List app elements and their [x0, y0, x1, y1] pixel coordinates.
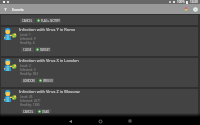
button[interactable]: CLOSE: [21, 47, 34, 52]
button[interactable]: Recent apps: [123, 117, 137, 125]
button[interactable]: DEAD: [37, 109, 51, 114]
staticText: Infected: 2671: [20, 99, 41, 103]
staticText: Healthy: 1385: [20, 103, 40, 107]
button[interactable]: CANCEL: [20, 18, 35, 23]
button[interactable]: Map: [183, 6, 189, 12]
staticText: 12:30: [190, 0, 198, 4]
staticText: Healthy: 4: [20, 41, 35, 45]
button[interactable]: CANCEL: [21, 109, 36, 114]
staticText: Infected: 9: [20, 37, 36, 41]
staticText: Infection with Virus Z in Moscow: [19, 89, 80, 94]
staticText: VIRUS X: [43, 79, 53, 83]
staticText: 100%: [177, 0, 185, 4]
staticText: Infection with Virus Y in Rome: [19, 27, 76, 32]
staticText: Infection with Virus X in London: [19, 58, 79, 63]
staticText: TARGET: [40, 48, 50, 52]
button[interactable]: TARGET: [35, 47, 51, 52]
staticText: Level: 1: [20, 33, 31, 37]
button[interactable]: Navigate up: [2, 4, 8, 14]
button[interactable]: LONDON: [21, 78, 37, 83]
button[interactable]: Home: [93, 117, 107, 125]
button[interactable]: FLAG + NOTIFY: [36, 18, 61, 23]
staticText: Infected: 3: [20, 68, 36, 72]
staticText: CANCEL: [23, 110, 34, 114]
button[interactable]: Infection with Virus Z in Moscow: [1, 89, 198, 118]
button[interactable]: Infection with Virus Y in Rome: [1, 27, 198, 56]
staticText: Level: 2: [20, 64, 31, 68]
staticText: LONDON: [23, 79, 35, 83]
button[interactable]: Back: [63, 117, 77, 125]
staticText: DEAD: [42, 110, 50, 114]
staticText: Healthy: 963: [20, 72, 39, 76]
button[interactable]: Infection with Virus X in London: [1, 58, 198, 87]
staticText: CANCEL: [22, 19, 33, 23]
staticText: Events: [12, 7, 24, 12]
staticText: FLAG + NOTIFY: [41, 19, 60, 23]
button[interactable]: CANCEL: [1, 15, 198, 25]
staticText: Level: 45: [20, 95, 33, 99]
button[interactable]: VIRUS X: [38, 78, 54, 83]
button[interactable]: Settings: [192, 6, 198, 12]
staticText: CLOSE: [23, 48, 32, 52]
